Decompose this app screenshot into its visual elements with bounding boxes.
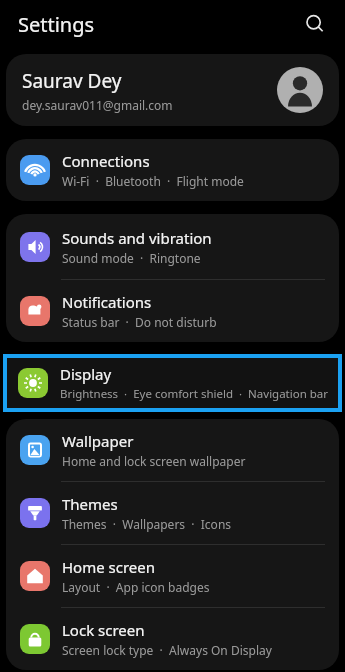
staticText: Notifications (62, 292, 152, 312)
button[interactable]: Display (7, 358, 338, 408)
staticText: Screen lock type · Always On Display (62, 642, 272, 658)
staticText: Connections (62, 151, 150, 171)
button[interactable]: Sounds and vibration (6, 214, 339, 279)
button[interactable]: Search (297, 6, 333, 42)
staticText: Layout · App icon badges (62, 579, 210, 595)
button[interactable]: Connections (6, 139, 339, 201)
button[interactable]: Saurav Dey (6, 54, 339, 126)
staticText: Lock screen (62, 620, 145, 640)
staticText: Wallpaper (62, 431, 134, 451)
button[interactable]: Themes (6, 482, 339, 544)
button[interactable]: Notifications (6, 280, 339, 342)
staticText: Saurav Dey (22, 68, 122, 94)
staticText: Sounds and vibration (62, 228, 212, 248)
staticText: Wi-Fi · Bluetooth · Flight mode (62, 173, 244, 189)
button[interactable]: Lock screen (6, 608, 339, 670)
staticText: Display (60, 364, 112, 384)
staticText: Themes · Wallpapers · Icons (62, 516, 232, 532)
staticText: Themes (62, 494, 118, 514)
staticText: dey.saurav011@gmail.com (22, 97, 173, 113)
button[interactable]: Profile picture (277, 67, 323, 113)
button[interactable]: Wallpaper (6, 419, 339, 481)
staticText: Sound mode · Ringtone (62, 250, 201, 266)
staticText: Settings (18, 11, 95, 38)
staticText: Home screen (62, 557, 156, 577)
staticText: Brightness · Eye comfort shield · Naviga… (60, 386, 329, 402)
staticText: Home and lock screen wallpaper (62, 453, 246, 469)
staticText: Status bar · Do not disturb (62, 314, 217, 330)
button[interactable]: Display (7, 358, 338, 408)
button[interactable]: Home screen (6, 545, 339, 607)
